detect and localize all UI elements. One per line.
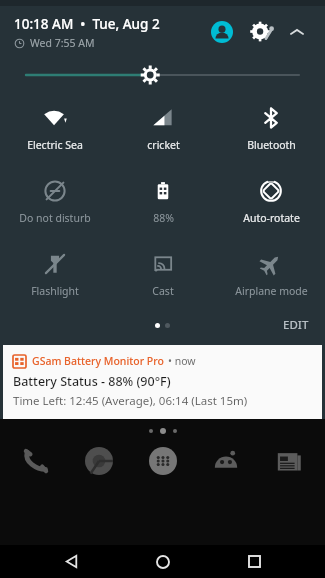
button[interactable]: Auto-rotate (217, 165, 325, 238)
staticText: Flashlight (31, 284, 79, 298)
button[interactable]: GSam Battery Monitor Pro (3, 345, 322, 419)
button[interactable]: Electric Sea (0, 92, 109, 165)
button[interactable]: Flashlight (0, 238, 109, 311)
button[interactable]: Back (50, 545, 92, 578)
staticText: 10:18 AM • Tue, Aug 2 (14, 15, 160, 33)
staticText: Do not disturb (19, 211, 91, 225)
button[interactable]: Phone (16, 441, 56, 481)
button[interactable]: Collapse (281, 16, 313, 48)
button[interactable]: Recent apps (233, 545, 275, 578)
staticText: Cast (152, 284, 174, 298)
staticText: cricket (147, 138, 180, 152)
staticText: • now (168, 354, 196, 368)
button[interactable]: Brightness (0, 58, 325, 92)
button[interactable]: News (269, 441, 309, 481)
staticText: Auto-rotate (243, 211, 300, 225)
button[interactable]: Chrome (79, 441, 119, 481)
staticText: Bluetooth (247, 138, 296, 152)
button[interactable]: Airplane mode (217, 238, 325, 311)
button[interactable]: EDIT (277, 313, 315, 337)
button[interactable]: Settings (245, 15, 279, 49)
staticText: Time Left: 12:45 (Average), 06:14 (Last … (13, 393, 248, 409)
staticText: EDIT (283, 317, 309, 333)
staticText: Wed 7:55 AM (30, 36, 95, 50)
button[interactable]: Do not disturb (0, 165, 109, 238)
button[interactable]: 88% (109, 165, 217, 238)
staticText: Battery Status - 88% (90°F) (13, 373, 171, 390)
button[interactable]: cricket (109, 92, 217, 165)
button[interactable]: User profile (205, 15, 239, 49)
staticText: 88% (153, 211, 174, 225)
button[interactable]: Home (142, 545, 184, 578)
button[interactable]: All apps (143, 441, 183, 481)
staticText: Airplane mode (235, 284, 308, 298)
button[interactable]: Bluetooth (217, 92, 325, 165)
button[interactable]: Cast (109, 238, 217, 311)
button[interactable]: Reddit (206, 441, 246, 481)
staticText: Electric Sea (27, 138, 83, 152)
staticText: GSam Battery Monitor Pro (32, 354, 164, 368)
